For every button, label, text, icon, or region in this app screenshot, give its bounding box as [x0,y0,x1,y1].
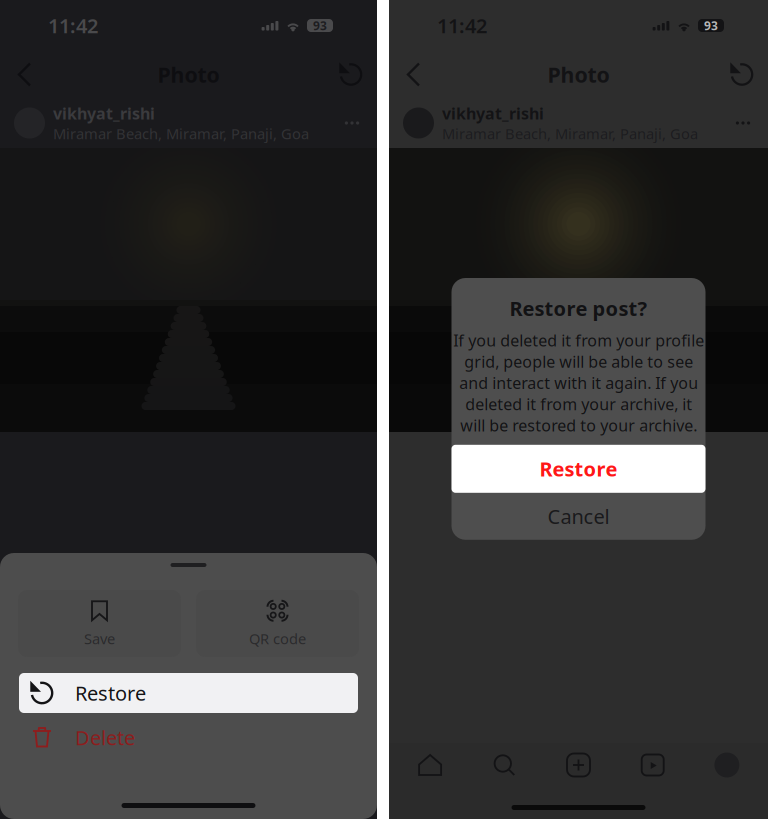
staticText: Restore [75,680,146,706]
staticText: Cancel [547,503,609,530]
staticText: QR code [249,629,306,648]
button[interactable]: Save [18,590,181,657]
staticText: Restore post? [509,295,647,322]
button[interactable]: Restore post [334,57,368,91]
staticText: Restore [539,455,617,482]
button[interactable]: Restore [19,673,358,713]
staticText: Delete [75,724,135,751]
button[interactable]: Home [393,743,467,787]
button[interactable]: Delete [19,713,358,762]
staticText: If you deleted it from your profile grid… [453,330,704,436]
staticText: Save [84,629,115,648]
button[interactable]: Restore [451,445,705,493]
button[interactable]: Restore post [725,57,759,91]
button[interactable]: Create [541,743,616,787]
staticText: Photo [547,60,609,89]
staticText: Miramar Beach, Miramar, Panaji, Goa [442,124,698,143]
button[interactable]: Profile [690,743,764,787]
button[interactable]: Back [398,57,432,91]
staticText: 11:42 [437,12,487,39]
button[interactable]: Reels [616,743,690,787]
staticText: Photo [157,60,219,89]
staticText: 93 [313,17,327,33]
button[interactable]: More options [726,108,760,138]
button[interactable]: QR code [196,590,359,657]
staticText: vikhyat_rishi [53,103,155,124]
staticText: 11:42 [48,12,98,39]
button[interactable]: More options [335,108,369,138]
staticText: Miramar Beach, Miramar, Panaji, Goa [53,124,309,143]
staticText: vikhyat_rishi [442,103,544,124]
button[interactable]: Cancel [451,493,705,540]
staticText: 93 [704,17,718,33]
button[interactable]: Search [467,743,541,787]
